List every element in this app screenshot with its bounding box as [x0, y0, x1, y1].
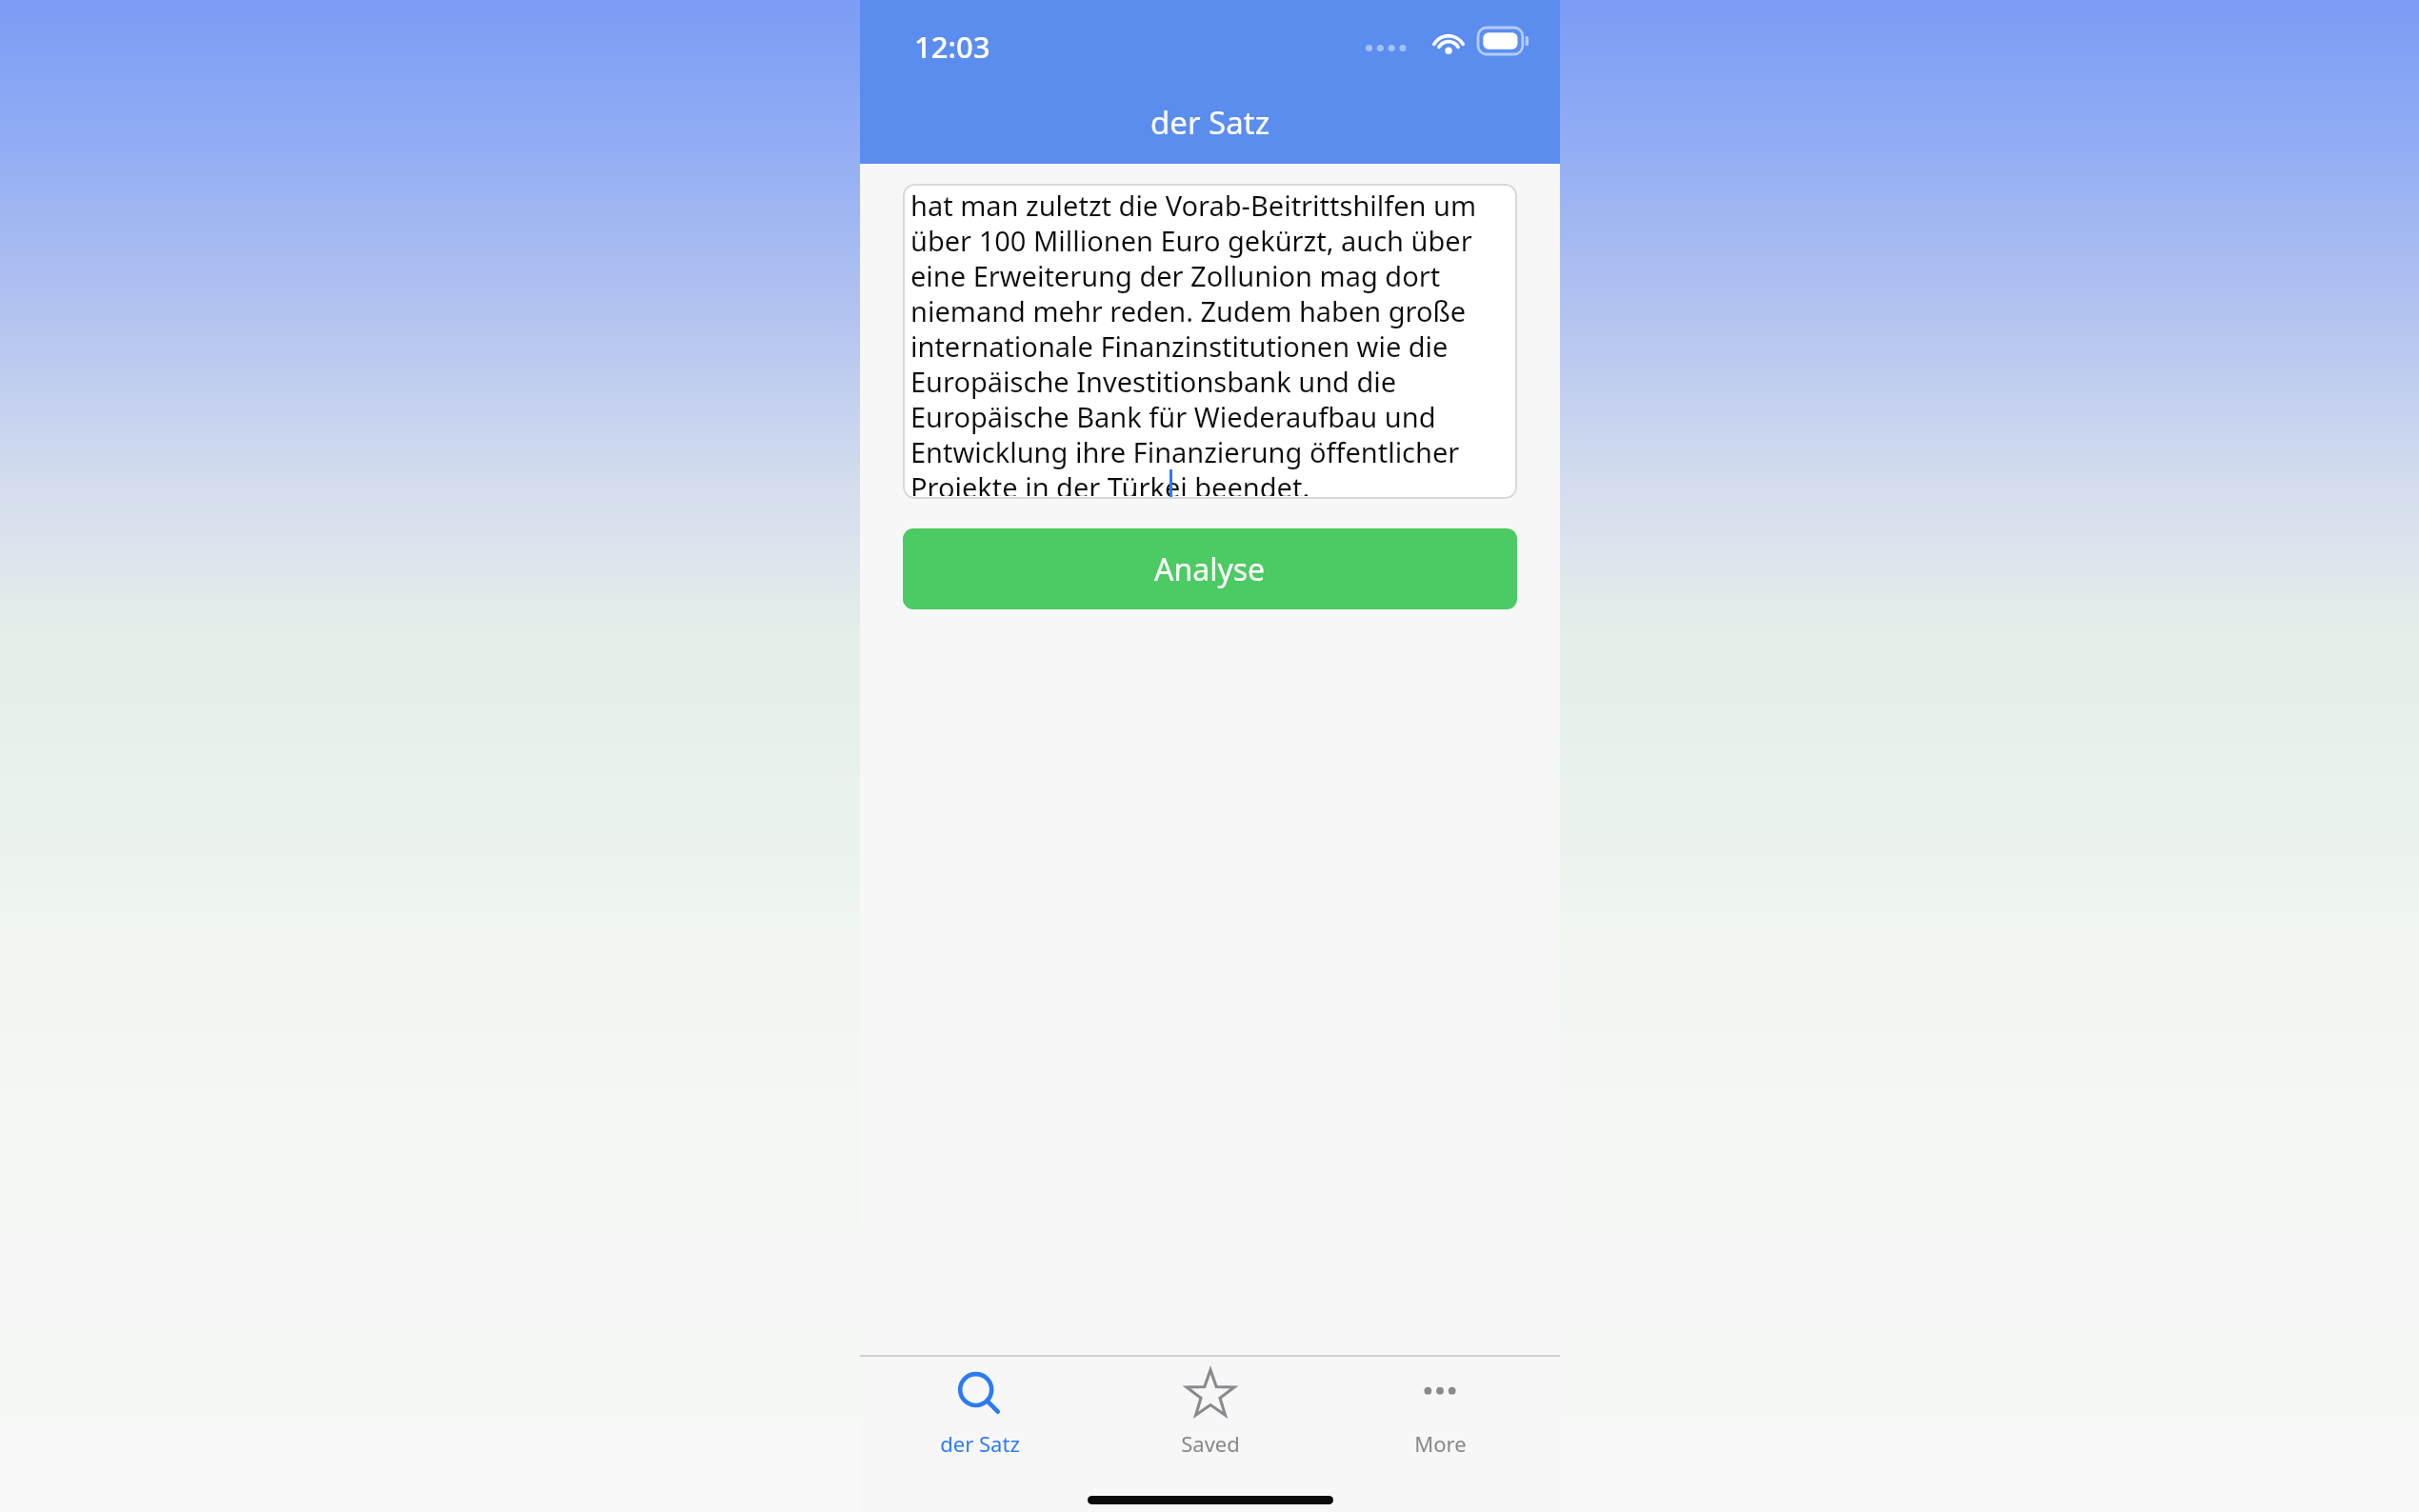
button[interactable]: hat man zuletzt die Vorab-Beitrittshilfe…: [903, 184, 1517, 499]
staticText: hat man zuletzt die Vorab-Beitrittshilfe…: [910, 187, 1509, 496]
button[interactable]: More: [1330, 1357, 1549, 1466]
other: More: [1414, 1369, 1466, 1421]
button[interactable]: Saved: [1101, 1357, 1320, 1466]
staticText: More: [1414, 1429, 1467, 1458]
other: Saved: [1184, 1368, 1237, 1422]
button[interactable]: Analyse: [903, 528, 1517, 609]
staticText: Analyse: [1154, 548, 1266, 590]
button[interactable]: der Satz search: [870, 1357, 1090, 1466]
staticText: Saved: [1181, 1429, 1240, 1458]
staticText: der Satz: [1150, 101, 1270, 144]
staticText: der Satz: [940, 1429, 1020, 1458]
other: der Satz search: [954, 1369, 1006, 1421]
staticText: 12:03: [914, 27, 990, 67]
